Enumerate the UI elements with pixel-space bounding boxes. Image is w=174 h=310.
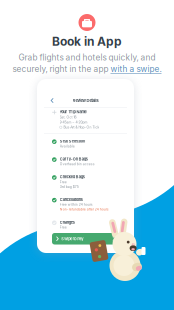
staticText: Bus-Art & Hop-On Tick <box>63 125 99 129</box>
staticText: Seat Selection <box>60 139 85 143</box>
button[interactable]: Swipe to Pay <box>52 233 119 244</box>
staticText: Your Trip Name <box>60 109 87 114</box>
staticText: Free <box>60 225 67 229</box>
staticText: 3rd bag $75 <box>60 185 79 189</box>
staticText: Checked Bags <box>60 175 85 179</box>
staticText: Changes <box>60 220 75 225</box>
staticText: Carry-On Bags <box>60 157 88 161</box>
staticText: Free <box>60 180 67 184</box>
staticText: Swipe to Pay <box>61 236 83 241</box>
staticText: Available <box>60 144 75 148</box>
button[interactable]: Back <box>50 97 54 103</box>
staticText: Overhead bin access <box>60 162 95 166</box>
staticText: Sat, Oct 16 <box>60 115 77 119</box>
staticText: Grab flights and hotels quickly, and <box>18 52 155 62</box>
staticText: securely, right in the app <box>12 64 110 74</box>
staticText: Review Details <box>72 98 98 103</box>
staticText: Non-refundable after 24 hours <box>60 207 109 211</box>
staticText: Book in App <box>52 34 122 48</box>
staticText: Cancellations <box>60 197 83 202</box>
staticText: Free within 24 hours <box>60 203 93 207</box>
staticText: with a swipe. <box>110 64 161 74</box>
staticText: 9:45am – 4:20pm <box>60 120 88 124</box>
